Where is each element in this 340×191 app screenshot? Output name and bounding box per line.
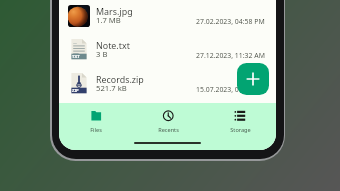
staticText: ZIP [72,88,79,94]
staticText: Mars.jpg [96,5,133,17]
staticText: TXT [72,54,80,60]
staticText: 27.02.2023, 04:58 PM [196,17,265,26]
staticText: 1.7 MB [96,15,121,25]
staticText: Recents [158,126,179,134]
button[interactable]: Mars.jpg [59,4,276,38]
button[interactable]: ZIP [59,72,276,106]
staticText: 521.7 kB [96,83,127,93]
staticText: Files [90,126,102,134]
button[interactable]: TXT [59,38,276,72]
button[interactable]: Recents [141,110,195,136]
staticText: 27.12.2023, 11:32 AM [196,51,265,60]
button[interactable]: Files [69,110,123,136]
button[interactable]: Storage [213,110,267,136]
button[interactable]: Add [237,63,269,95]
staticText: Records.zip [96,73,144,85]
staticText: 3 B [96,49,108,59]
staticText: Storage [230,126,251,134]
staticText: Note.txt [96,39,130,51]
staticText: 15.07.2023, 09:06 AM [196,85,265,94]
